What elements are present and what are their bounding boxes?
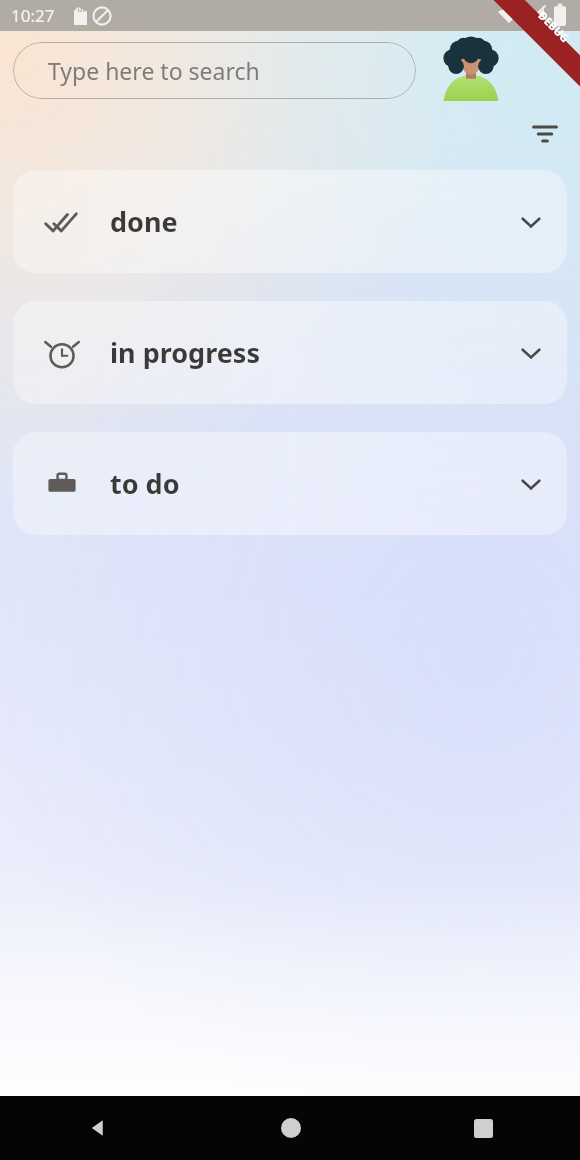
button[interactable]: Expand done — [503, 194, 559, 250]
staticText: in progress — [110, 334, 260, 371]
staticText: to do — [110, 465, 180, 502]
button[interactable]: Expand in progress — [503, 325, 559, 381]
button[interactable]: Home — [194, 1096, 387, 1160]
button[interactable]: to do — [13, 432, 567, 535]
button[interactable]: Profile — [440, 39, 502, 101]
button[interactable]: done — [13, 170, 567, 273]
button[interactable]: Back — [0, 1096, 194, 1160]
staticText: DEBUG — [535, 8, 573, 45]
staticText: Type here to search — [48, 55, 260, 86]
button[interactable]: Type here to search — [13, 42, 416, 99]
button[interactable]: Filter — [523, 112, 567, 156]
button[interactable]: Recents — [387, 1096, 580, 1160]
staticText: done — [110, 203, 178, 240]
button[interactable]: Expand to do — [503, 456, 559, 512]
button[interactable]: in progress — [13, 301, 567, 404]
staticText: 10:27 — [11, 4, 55, 27]
